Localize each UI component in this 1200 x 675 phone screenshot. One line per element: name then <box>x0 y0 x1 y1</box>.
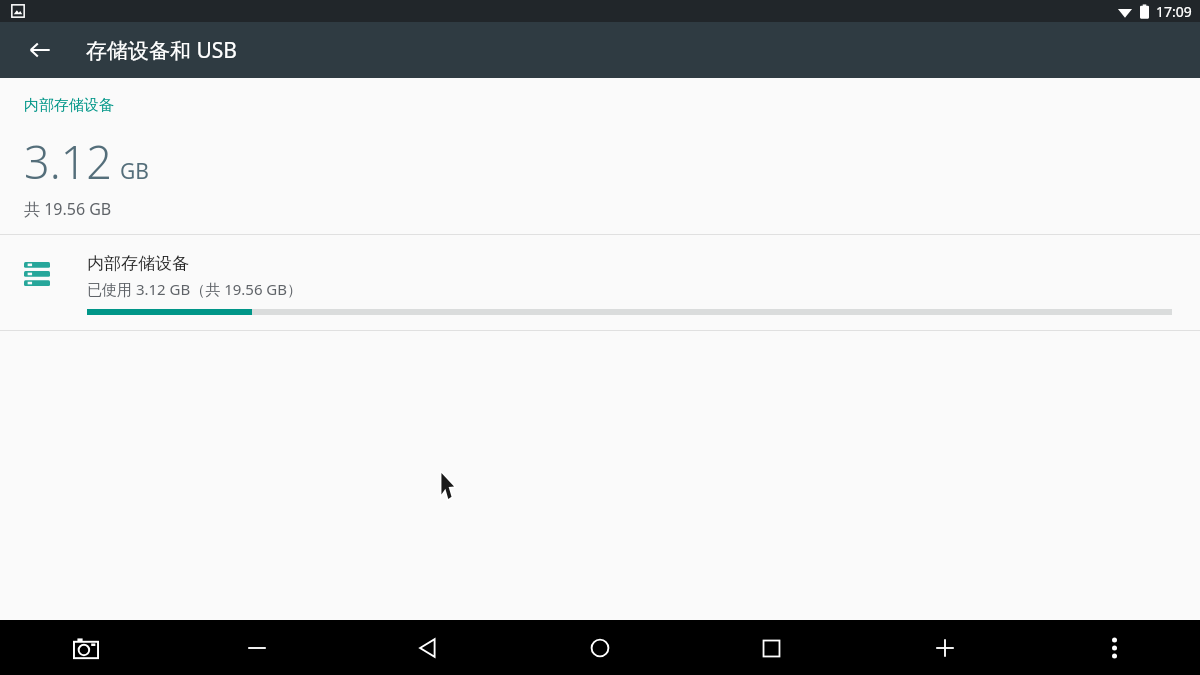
button[interactable]: Home <box>576 624 624 672</box>
staticText: GB <box>120 157 149 186</box>
button[interactable]: 内部存储设备 <box>0 235 1200 330</box>
staticText: 内部存储设备 <box>87 253 189 274</box>
button[interactable]: Volume up <box>921 624 969 672</box>
staticText: 3.12 <box>24 131 113 192</box>
button[interactable]: Back <box>16 26 64 74</box>
button[interactable]: Recent apps <box>747 624 795 672</box>
staticText: 存储设备和 USB <box>86 36 237 65</box>
button[interactable]: Volume down <box>233 624 281 672</box>
staticText: 共 19.56 GB <box>24 198 112 220</box>
staticText: 内部存储设备 <box>24 96 114 115</box>
button[interactable]: Back <box>404 624 452 672</box>
button[interactable]: More options <box>1090 624 1138 672</box>
staticText: 17:09 <box>1156 2 1192 21</box>
staticText: 已使用 3.12 GB（共 19.56 GB） <box>87 279 303 299</box>
button[interactable]: Camera <box>62 624 110 672</box>
